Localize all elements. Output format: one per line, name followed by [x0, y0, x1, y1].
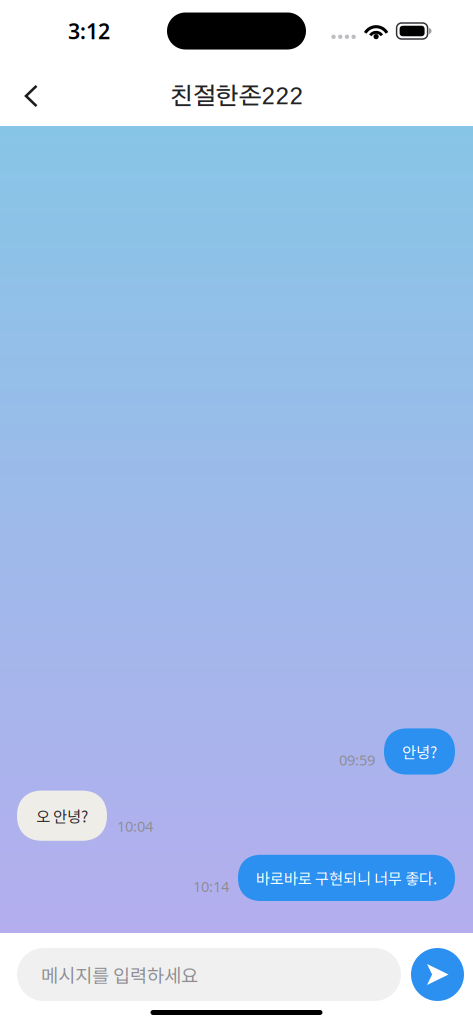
button[interactable]: Send — [411, 948, 464, 1001]
staticText: 10:04 — [117, 816, 153, 836]
staticText: 오 안녕? — [36, 805, 88, 827]
button[interactable]: Back — [0, 69, 55, 118]
staticText: 메시지를 입력하세요 — [41, 961, 198, 988]
staticText: 3:12 — [68, 17, 110, 45]
staticText: 09:59 — [339, 750, 375, 770]
staticText: 친절한존222 — [169, 85, 303, 109]
staticText: 안녕? — [402, 740, 437, 763]
staticText: 바로바로 구현되니 너무 좋다. — [256, 867, 437, 889]
staticText: 10:14 — [193, 876, 229, 896]
button[interactable]: 메시지를 입력하세요 — [17, 948, 401, 1001]
